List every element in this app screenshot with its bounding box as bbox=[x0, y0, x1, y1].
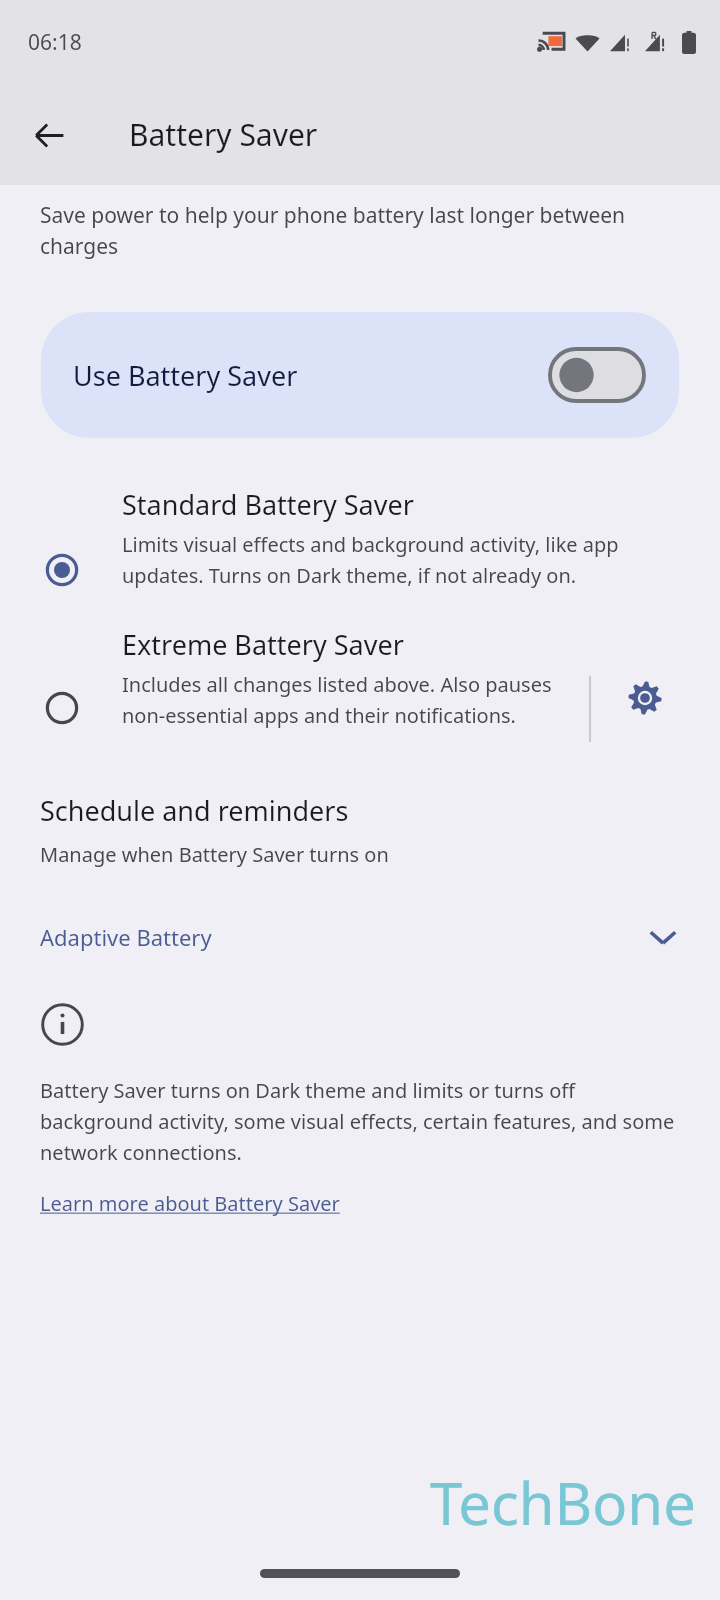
staticText: Limits visual effects and background act… bbox=[122, 531, 663, 589]
button[interactable]: Adaptive Battery bbox=[0, 906, 720, 968]
staticText: Battery Saver bbox=[129, 114, 318, 155]
staticText: Standard Battery Saver bbox=[122, 486, 414, 523]
staticText: Schedule and reminders bbox=[40, 792, 349, 829]
staticText: Manage when Battery Saver turns on bbox=[40, 841, 389, 868]
staticText: Use Battery Saver bbox=[73, 357, 550, 394]
staticText: Battery Saver turns on Dark theme and li… bbox=[40, 1077, 680, 1166]
staticText: 06:18 bbox=[28, 28, 82, 57]
button[interactable]: Extreme Battery Saver settings bbox=[615, 668, 675, 728]
button[interactable]: Use Battery Saver bbox=[41, 312, 679, 438]
staticText: Includes all changes listed above. Also … bbox=[122, 671, 577, 729]
staticText: TechBone bbox=[430, 1463, 696, 1542]
staticText: Learn more about Battery Saver bbox=[40, 1190, 340, 1217]
staticText: Save power to help your phone battery la… bbox=[40, 201, 660, 260]
staticText: Adaptive Battery bbox=[40, 922, 646, 952]
button[interactable]: Extreme Battery Saver bbox=[0, 626, 720, 742]
staticText: Extreme Battery Saver bbox=[122, 626, 404, 663]
button[interactable]: Back bbox=[18, 104, 80, 166]
button[interactable]: Learn more about Battery Saver bbox=[40, 1190, 340, 1217]
button[interactable]: Standard Battery Saver bbox=[0, 486, 720, 592]
